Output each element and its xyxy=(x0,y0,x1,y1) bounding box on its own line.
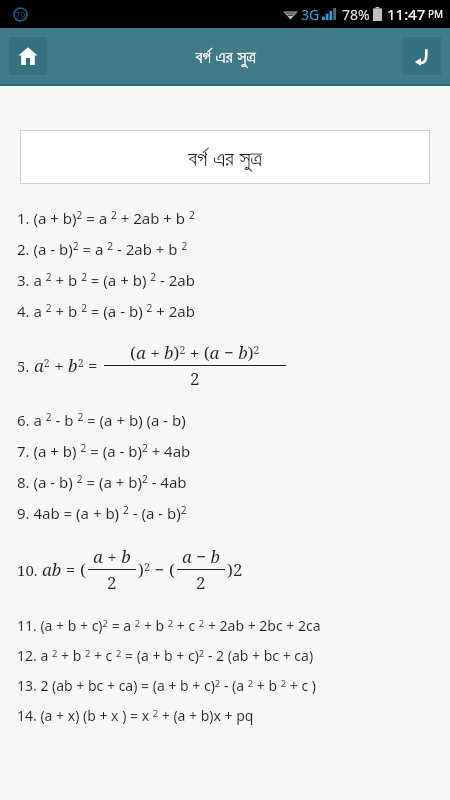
staticText: ab = xyxy=(42,558,80,581)
staticText: (a + b)2 + (a − b)2 xyxy=(130,341,260,364)
staticText: 78% xyxy=(342,5,370,24)
staticText: বর্গ এর সুত্র xyxy=(195,44,256,69)
staticText: )2 xyxy=(138,558,150,581)
staticText: 11. (a + b + c)2 = a 2 + b 2 + c 2 + 2ab… xyxy=(17,616,321,635)
staticText: 12. a 2 + b 2 + c 2 = (a + b + c)2 - 2 (… xyxy=(17,646,314,665)
staticText: a − b xyxy=(182,545,221,568)
staticText: 9. 4ab = (a + b) 2 - (a - b)2 xyxy=(17,503,187,523)
staticText: 8. (a - b) 2 = (a + b)2 - 4ab xyxy=(17,472,187,492)
staticText: 79 xyxy=(15,9,26,21)
button[interactable]: Home xyxy=(9,37,47,75)
staticText: a + b xyxy=(93,545,131,568)
staticText: ( xyxy=(80,558,86,581)
button[interactable]: Back xyxy=(403,37,441,75)
staticText: 14. (a + x) (b + x ) = x 2 + (a + b)x + … xyxy=(17,706,254,725)
staticText: 2 xyxy=(107,571,117,594)
staticText: 3G xyxy=(301,5,320,24)
staticText: 11:47 xyxy=(387,4,426,24)
button[interactable]: বর্গ এর সুত্র xyxy=(20,130,430,184)
staticText: 7. (a + b) 2 = (a - b)2 + 4ab xyxy=(17,441,191,461)
staticText: 13. 2 (ab + bc + ca) = (a + b + c)2 - (a… xyxy=(17,676,317,695)
staticText: 2 xyxy=(190,367,200,390)
staticText: 10. xyxy=(17,560,42,580)
staticText: 6. a 2 - b 2 = (a + b) (a - b) xyxy=(17,410,186,430)
staticText: )2 xyxy=(227,558,243,581)
staticText: 1. (a + b)2 = a 2 + 2ab + b 2 xyxy=(17,208,195,228)
staticText: a2 + b2 = xyxy=(34,354,102,377)
staticText: 4. a 2 + b 2 = (a - b) 2 + 2ab xyxy=(17,301,195,321)
staticText: 2 xyxy=(196,571,206,594)
staticText: PM xyxy=(428,7,444,21)
staticText: ( xyxy=(169,558,175,581)
staticText: 5. xyxy=(17,356,34,376)
staticText: বর্গ এর সুত্র xyxy=(188,142,262,172)
staticText: 3. a 2 + b 2 = (a + b) 2 - 2ab xyxy=(17,270,195,290)
staticText: 2. (a - b)2 = a 2 - 2ab + b 2 xyxy=(17,239,188,259)
staticText: − xyxy=(150,558,169,581)
